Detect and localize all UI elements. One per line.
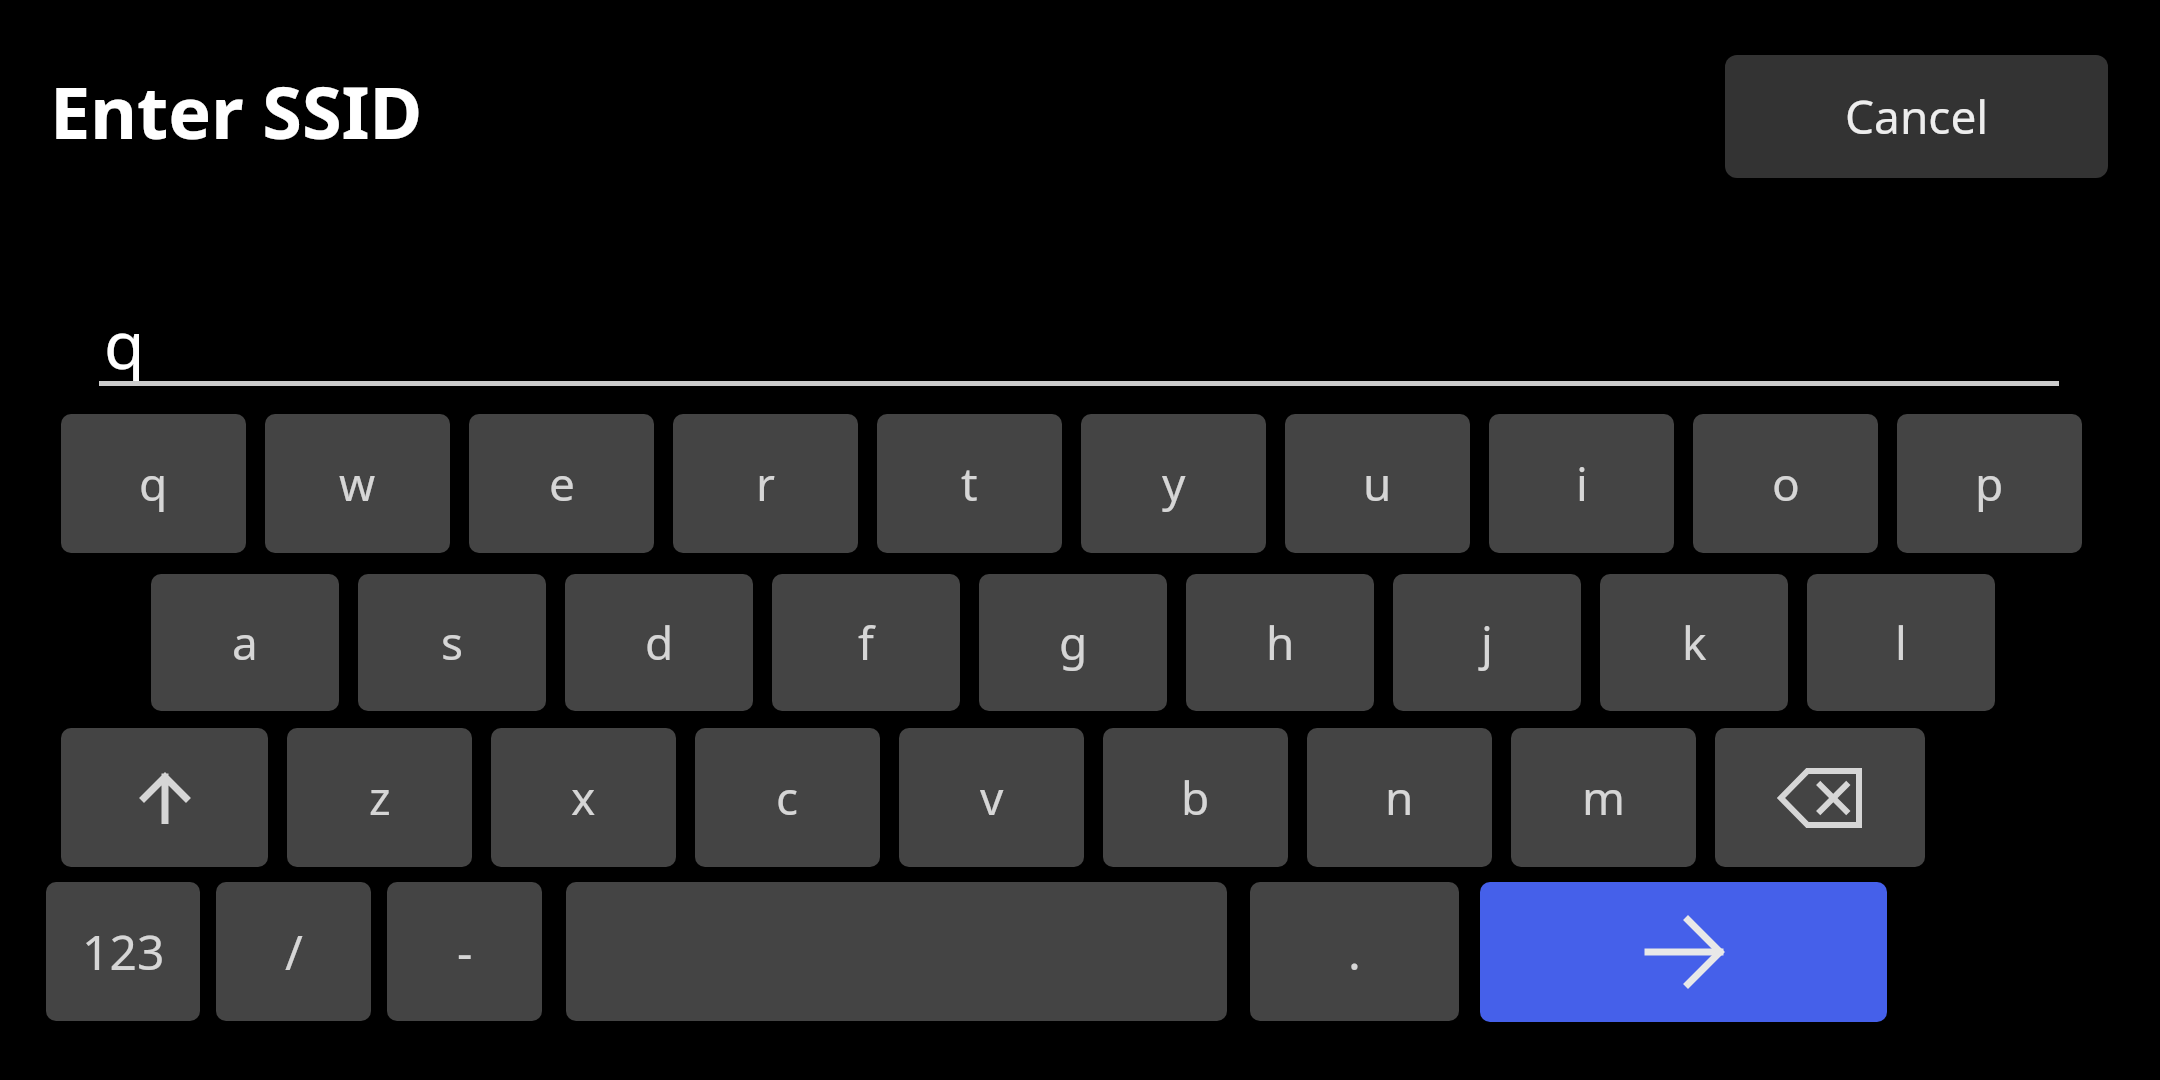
staticText: c (776, 766, 799, 829)
button[interactable]: o (1693, 414, 1878, 553)
staticText: l (1895, 611, 1907, 674)
staticText: . (1348, 919, 1361, 984)
button[interactable]: Go (1480, 882, 1887, 1022)
staticText: g (1059, 611, 1088, 674)
button[interactable]: s (358, 574, 546, 711)
button[interactable]: n (1307, 728, 1492, 867)
button[interactable]: Cancel (1725, 55, 2108, 178)
staticText: f (858, 611, 874, 674)
staticText: k (1682, 611, 1707, 674)
staticText: z (369, 766, 391, 829)
staticText: o (1772, 452, 1800, 515)
button[interactable]: g (979, 574, 1167, 711)
button[interactable]: w (265, 414, 450, 553)
button[interactable]: Shift (61, 728, 268, 867)
button[interactable]: Backspace (1715, 728, 1925, 867)
staticText: i (1576, 452, 1588, 515)
button[interactable]: i (1489, 414, 1674, 553)
button[interactable]: - (387, 882, 542, 1021)
button[interactable]: . (1250, 882, 1459, 1021)
button[interactable]: z (287, 728, 472, 867)
staticText: w (339, 452, 376, 515)
button[interactable]: b (1103, 728, 1288, 867)
button[interactable]: y (1081, 414, 1266, 553)
button[interactable]: m (1511, 728, 1696, 867)
staticText: h (1266, 611, 1295, 674)
button[interactable]: j (1393, 574, 1581, 711)
staticText: y (1162, 452, 1186, 515)
staticText: u (1363, 452, 1392, 515)
staticText: q (104, 298, 145, 388)
button[interactable]: / (216, 882, 371, 1021)
staticText: n (1385, 766, 1414, 829)
staticText: - (457, 919, 473, 984)
staticText: r (756, 452, 775, 515)
staticText: e (549, 452, 575, 515)
button[interactable]: a (151, 574, 339, 711)
button[interactable]: p (1897, 414, 2082, 553)
button[interactable]: r (673, 414, 858, 553)
staticText: m (1582, 766, 1626, 829)
button[interactable]: e (469, 414, 654, 553)
button[interactable]: c (695, 728, 880, 867)
button[interactable]: v (899, 728, 1084, 867)
staticText: v (980, 766, 1004, 829)
button[interactable]: t (877, 414, 1062, 553)
staticText: x (571, 766, 596, 829)
button[interactable]: f (772, 574, 960, 711)
staticText: t (961, 452, 978, 515)
button[interactable]: h (1186, 574, 1374, 711)
button[interactable]: d (565, 574, 753, 711)
staticText: Cancel (1845, 85, 1989, 148)
staticText: p (1975, 452, 2004, 515)
staticText: b (1181, 766, 1210, 829)
staticText: d (645, 611, 674, 674)
button[interactable]: q (61, 414, 246, 553)
staticText: q (139, 452, 168, 515)
staticText: 123 (82, 919, 165, 984)
button[interactable]: l (1807, 574, 1995, 711)
staticText: s (441, 611, 464, 674)
button[interactable]: 123 (46, 882, 200, 1021)
staticText: j (1481, 611, 1493, 674)
button[interactable]: u (1285, 414, 1470, 553)
button[interactable]: x (491, 728, 676, 867)
staticText: a (232, 611, 258, 674)
staticText: / (285, 919, 303, 984)
button[interactable]: k (1600, 574, 1788, 711)
staticText: Enter SSID (50, 62, 423, 160)
